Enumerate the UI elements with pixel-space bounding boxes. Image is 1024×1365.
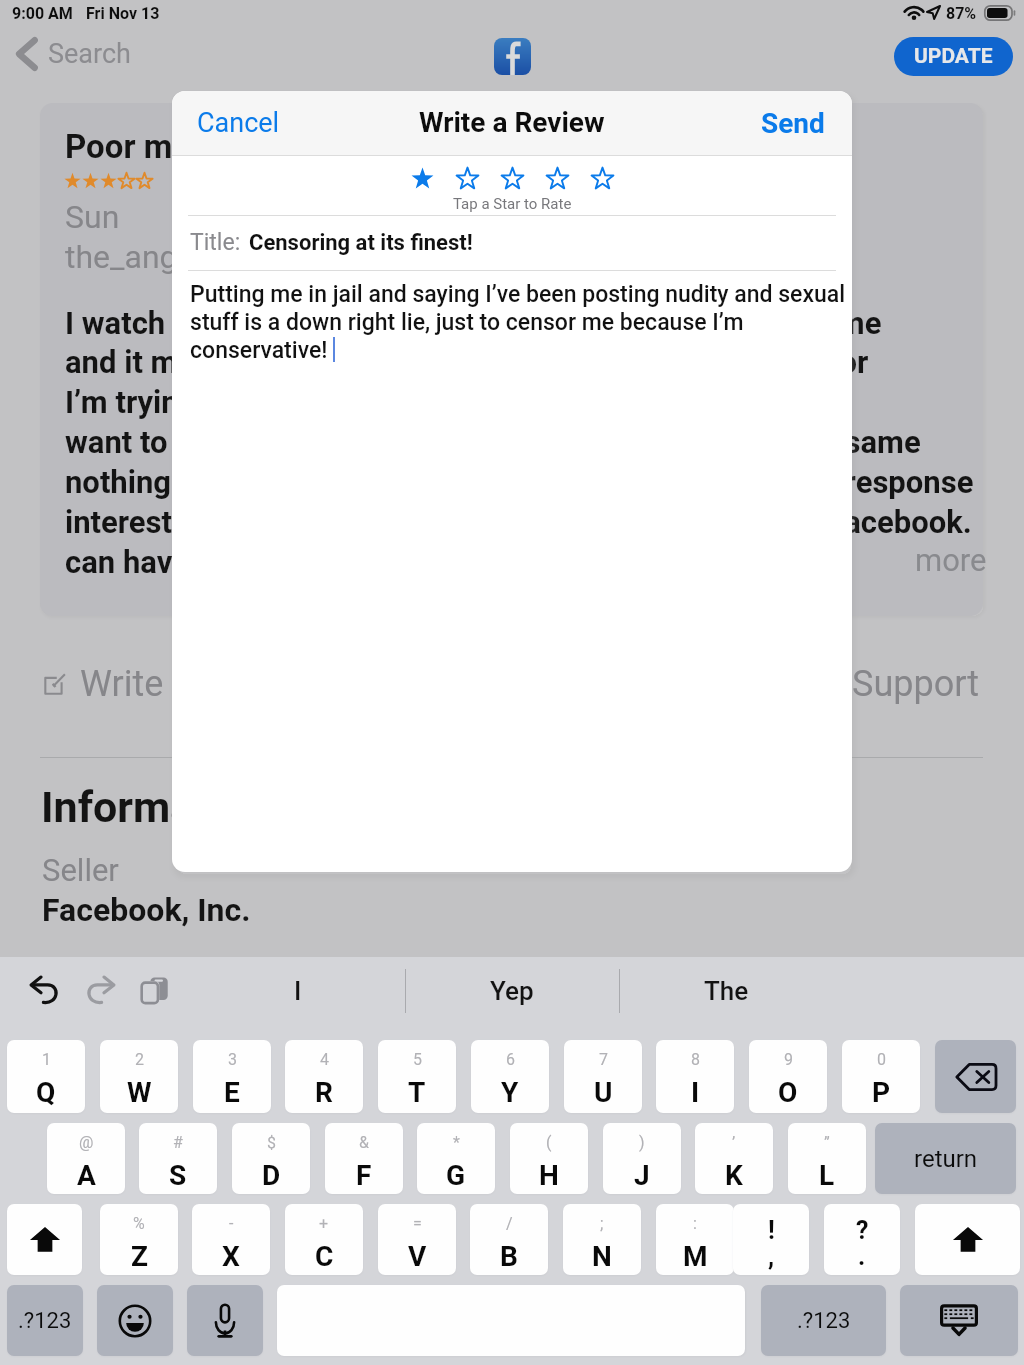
button[interactable]: .?123 <box>761 1285 886 1356</box>
staticText: T <box>408 1076 426 1109</box>
button[interactable]: Rate 2 star <box>445 166 490 206</box>
staticText: A <box>77 1159 96 1192</box>
staticText: 0 <box>877 1050 886 1069</box>
button[interactable]: = <box>378 1204 456 1275</box>
staticText: B <box>500 1240 518 1273</box>
button[interactable]: 8 <box>656 1040 734 1113</box>
button[interactable]: 1 <box>7 1040 85 1113</box>
button[interactable]: ) <box>603 1123 681 1194</box>
button[interactable]: Dictate <box>187 1285 263 1356</box>
button[interactable]: 5 <box>378 1040 456 1113</box>
staticText: Tap a Star to Rate <box>453 195 572 213</box>
staticText: I watch a lot of videos on this app that… <box>65 305 974 581</box>
button[interactable]: * <box>417 1123 495 1194</box>
staticText: @ <box>79 1133 94 1152</box>
staticText: 1 <box>42 1050 51 1069</box>
staticText: .?123 <box>18 1308 72 1334</box>
button[interactable]: 7 <box>564 1040 642 1113</box>
staticText: Title: <box>190 229 241 256</box>
staticText: * <box>453 1133 460 1152</box>
button[interactable]: UPDATE <box>894 37 1013 76</box>
staticText: W <box>127 1076 152 1109</box>
button[interactable]: Send <box>761 107 825 140</box>
button[interactable]: 0 <box>842 1040 920 1113</box>
staticText: . <box>858 1242 866 1271</box>
staticText: - <box>229 1214 234 1233</box>
button[interactable]: Shift <box>915 1204 1020 1275</box>
staticText: Censoring at its finest! <box>249 230 473 256</box>
button[interactable]: return <box>875 1123 1016 1194</box>
button[interactable]: Backspace <box>935 1040 1016 1113</box>
button[interactable]: 3 <box>193 1040 271 1113</box>
staticText: K <box>725 1159 743 1192</box>
button[interactable]: Support <box>852 663 980 705</box>
button[interactable]: : <box>656 1204 734 1275</box>
button[interactable]: Rate 3 star <box>490 166 535 206</box>
button[interactable]: Hide keyboard <box>900 1285 1018 1356</box>
button[interactable]: Write a Review <box>44 663 315 705</box>
staticText: 87% <box>946 4 977 23</box>
button[interactable]: 9 <box>749 1040 827 1113</box>
staticText: UPDATE <box>914 44 993 69</box>
button[interactable]: & <box>325 1123 403 1194</box>
button[interactable]: $ <box>232 1123 310 1194</box>
staticText: 9 <box>784 1050 793 1069</box>
button[interactable]: ; <box>563 1204 641 1275</box>
button[interactable]: Paste <box>140 974 174 1008</box>
staticText: Z <box>131 1240 148 1273</box>
staticText: Write a Review <box>80 663 315 705</box>
staticText: N <box>592 1240 612 1273</box>
staticText: 3 <box>228 1050 237 1069</box>
button[interactable]: 4 <box>285 1040 363 1113</box>
button[interactable]: more <box>915 542 987 578</box>
button[interactable]: Undo <box>29 976 59 1006</box>
button[interactable]: Rate 1 star <box>400 166 445 206</box>
staticText: Search <box>48 38 131 70</box>
staticText: Y <box>501 1076 519 1109</box>
button[interactable]: I <box>191 965 405 1017</box>
button[interactable]: Redo <box>86 976 116 1006</box>
button[interactable]: Emoji <box>97 1285 173 1356</box>
staticText: 7 <box>599 1050 608 1069</box>
staticText: # <box>173 1133 183 1152</box>
button[interactable]: ’ <box>695 1123 773 1194</box>
button[interactable]: + <box>285 1204 363 1275</box>
button[interactable]: Shift <box>7 1204 82 1275</box>
button[interactable]: Cancel <box>197 107 280 139</box>
button[interactable]: % <box>100 1204 178 1275</box>
staticText: E <box>224 1076 240 1109</box>
button[interactable]: .?123 <box>7 1285 83 1356</box>
staticText: ” <box>824 1133 830 1152</box>
staticText: O <box>778 1076 798 1109</box>
button[interactable]: Yep <box>405 965 619 1017</box>
staticText: + <box>319 1214 329 1233</box>
button[interactable]: Search <box>16 38 131 70</box>
button[interactable]: 6 <box>471 1040 549 1113</box>
staticText: Yep <box>490 976 534 1006</box>
button[interactable]: Rate 4 star <box>535 166 580 206</box>
staticText: The <box>704 976 749 1006</box>
button[interactable]: # <box>139 1123 217 1194</box>
staticText: , <box>768 1242 775 1271</box>
button[interactable]: - <box>192 1204 270 1275</box>
staticText: ) <box>639 1133 645 1152</box>
button[interactable]: ! <box>733 1204 809 1275</box>
button[interactable]: The <box>619 965 833 1017</box>
staticText: the_angel <box>65 238 203 276</box>
button[interactable]: Facebook <box>494 38 531 75</box>
button[interactable]: @ <box>47 1123 125 1194</box>
staticText: & <box>359 1133 369 1152</box>
staticText: ’ <box>732 1133 736 1152</box>
staticText: ( <box>546 1133 552 1152</box>
button[interactable]: / <box>470 1204 548 1275</box>
button[interactable]: Rate 5 star <box>580 166 625 206</box>
staticText: ! <box>768 1216 775 1245</box>
button[interactable]: 2 <box>100 1040 178 1113</box>
staticText: G <box>446 1159 466 1192</box>
button[interactable]: ” <box>788 1123 866 1194</box>
button[interactable]: ( <box>510 1123 588 1194</box>
staticText: 5 <box>413 1050 422 1069</box>
button[interactable]: ? <box>824 1204 900 1275</box>
staticText: P <box>872 1076 891 1109</box>
